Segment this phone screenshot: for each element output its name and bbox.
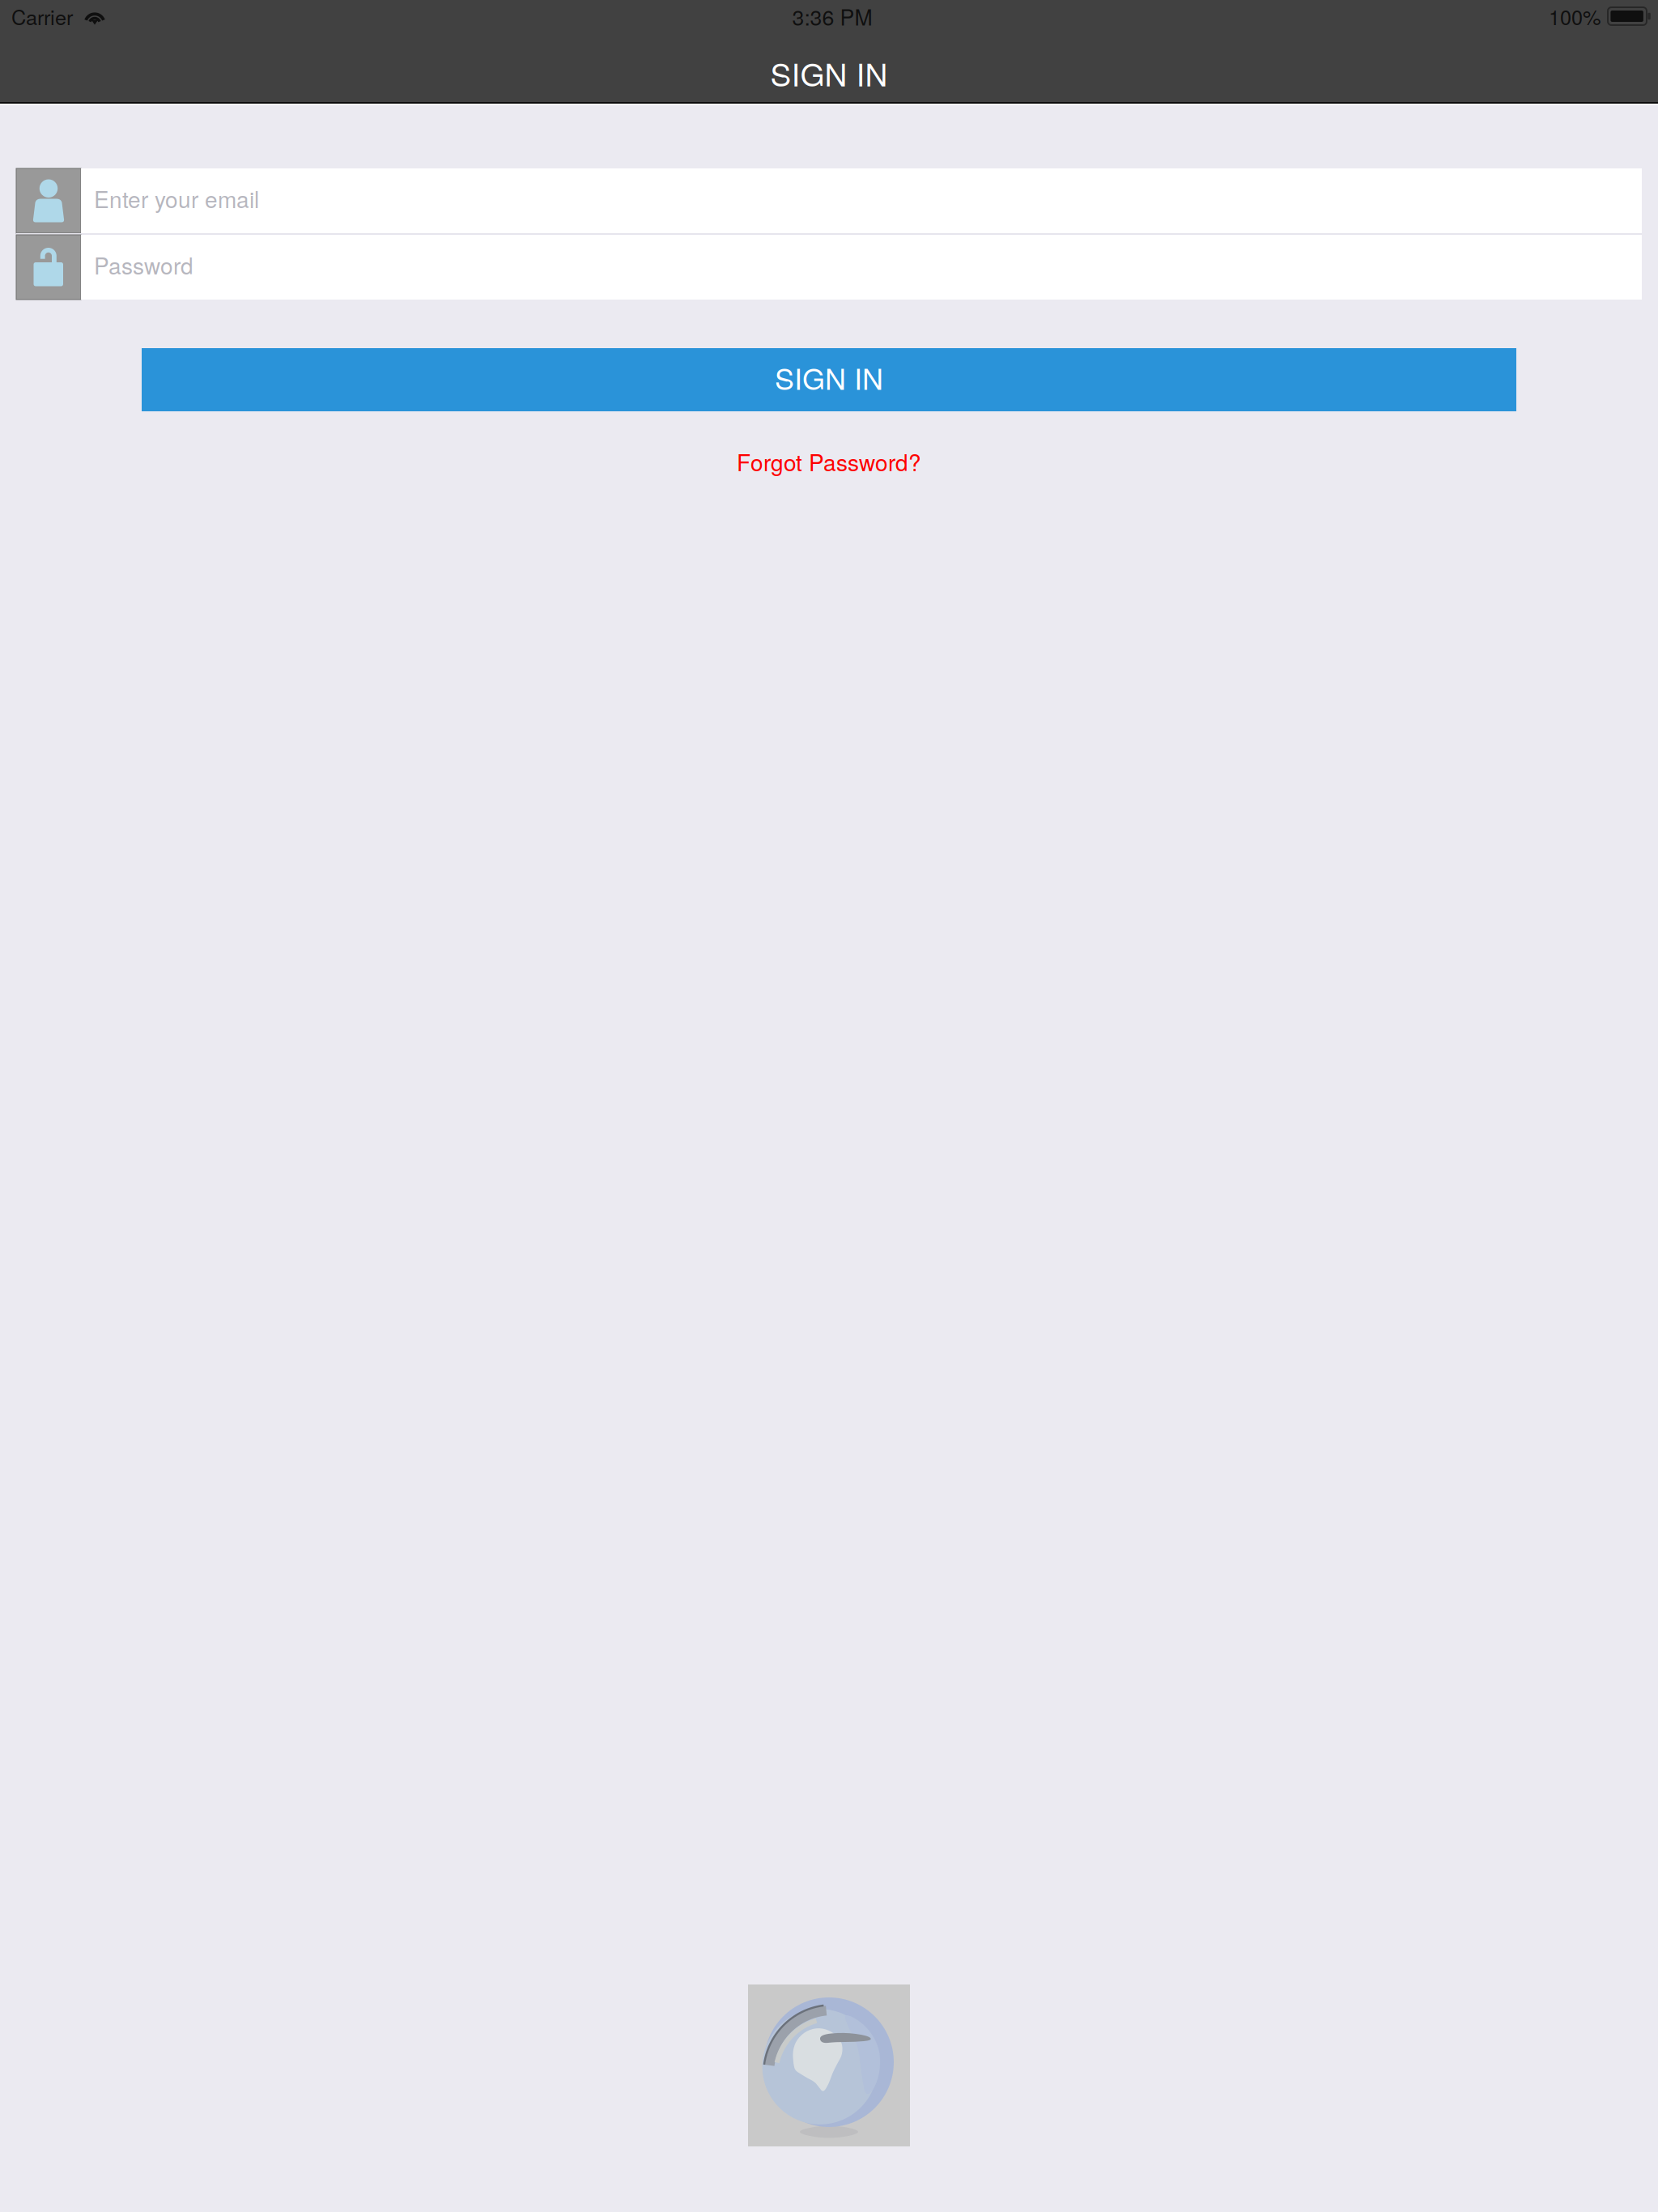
staticText: Enter your email (94, 182, 259, 215)
staticText: Forgot Password? (737, 445, 921, 478)
staticText: Carrier (11, 2, 73, 31)
staticText: SIGN IN (775, 356, 883, 398)
button[interactable]: Forgot Password? (0, 444, 1658, 481)
staticText: 100% (1549, 2, 1601, 31)
staticText: Password (94, 249, 193, 281)
staticText: SIGN IN (770, 50, 888, 95)
button[interactable]: Password (16, 235, 1642, 300)
button[interactable]: SIGN IN (142, 348, 1516, 411)
staticText: 3:36 PM (792, 1, 872, 32)
button[interactable]: Enter your email (16, 168, 1642, 233)
